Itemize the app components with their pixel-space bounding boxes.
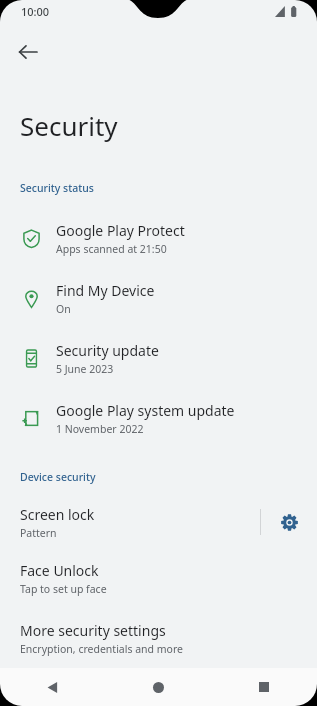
button[interactable]: Back [0,668,105,706]
button[interactable]: Back [6,30,50,74]
staticText: Security update [56,341,159,360]
staticText: Encryption, credentials and more [20,642,184,656]
button[interactable]: Recent apps [211,668,317,706]
staticText: Face Unlock [20,561,99,580]
button[interactable]: Google Play Protect [0,208,317,268]
button[interactable]: Screen lock [0,496,260,548]
staticText: 1 November 2022 [56,422,144,436]
staticText: Google Play system update [56,401,235,420]
staticText: 10:00 [21,4,50,19]
button[interactable]: Find My Device [0,268,317,328]
staticText: Pattern [20,526,57,540]
staticText: 5 June 2023 [56,362,114,376]
button[interactable]: Security update [0,328,317,388]
button[interactable]: Screen lock settings [261,496,317,548]
staticText: Device security [20,470,96,484]
button[interactable]: Home [105,668,211,706]
staticText: Security status [20,181,94,195]
button[interactable]: Google Play system update [0,388,317,448]
staticText: Find My Device [56,281,155,300]
staticText: Security [20,108,118,143]
staticText: Screen lock [20,505,95,524]
staticText: Apps scanned at 21:50 [56,242,167,256]
staticText: More security settings [20,621,166,640]
staticText: On [56,302,71,316]
staticText: Tap to set up face [20,582,107,596]
staticText: Google Play Protect [56,221,185,240]
button[interactable]: More security settings [0,608,317,668]
button[interactable]: Face Unlock [0,548,317,608]
